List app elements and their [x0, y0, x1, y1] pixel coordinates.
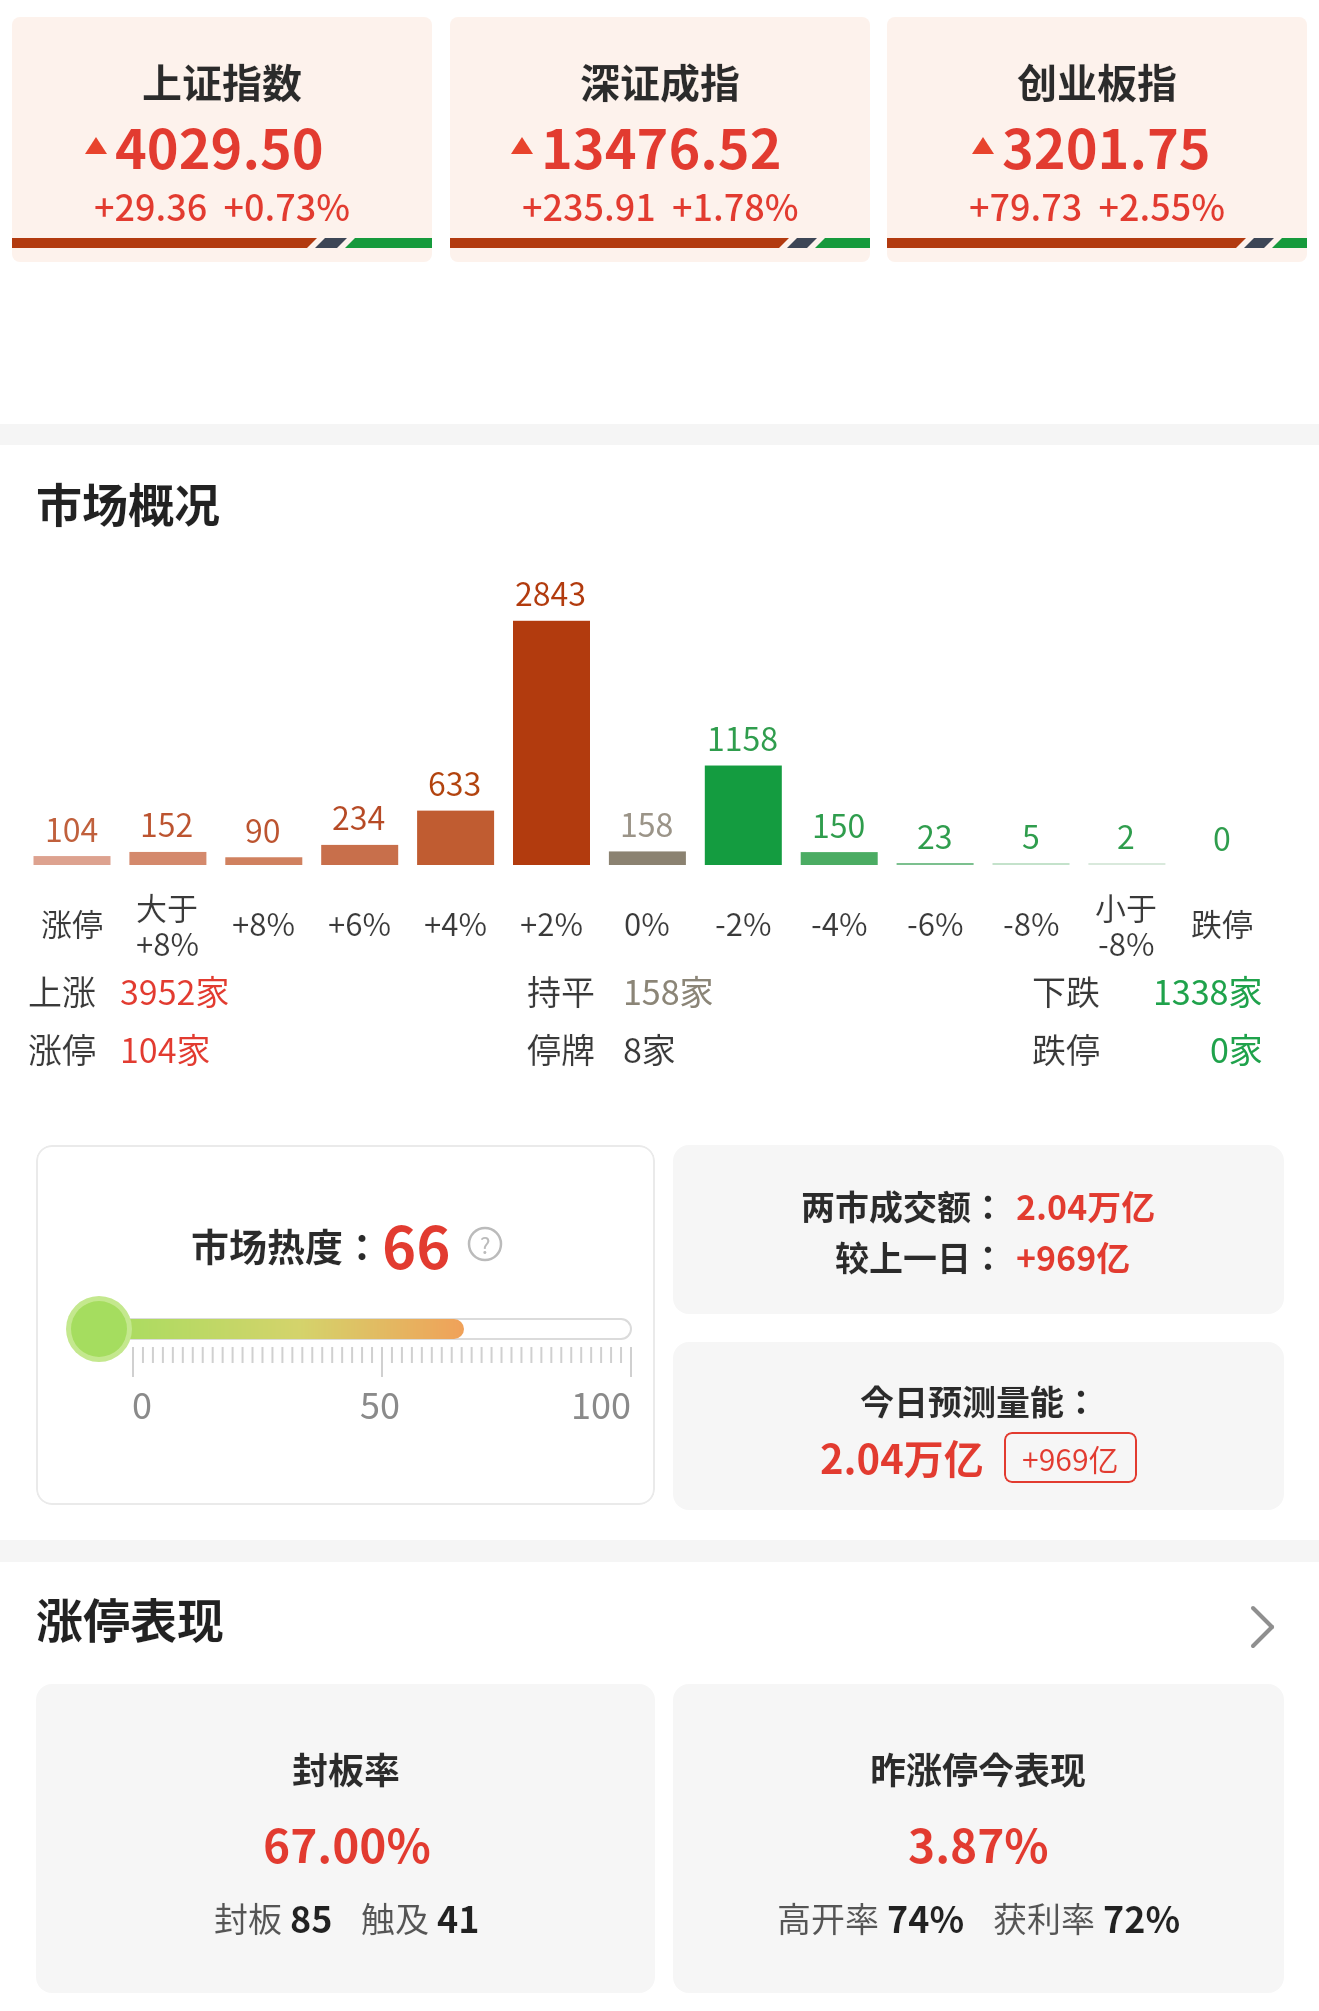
staticText: 66 — [382, 1202, 451, 1286]
staticText: 上证指数 — [142, 52, 302, 110]
staticText: +6% — [328, 900, 391, 945]
staticText: 0 — [132, 1377, 152, 1429]
staticText: 3.87% — [908, 1810, 1049, 1877]
button[interactable]: 两市成交额： — [673, 1145, 1284, 1314]
button[interactable]: 创业板指 — [887, 17, 1307, 262]
staticText: 100 — [571, 1377, 631, 1429]
staticText: +29.36 +0.73% — [94, 179, 351, 231]
staticText: 获利率 — [993, 1893, 1103, 1942]
staticText: 633 — [428, 759, 482, 805]
staticText: 停牌 — [527, 1024, 595, 1073]
button[interactable]: 市场热度： — [36, 1145, 655, 1505]
staticText: +8% — [232, 900, 295, 945]
staticText: 昨涨停今表现 — [870, 1742, 1087, 1794]
button[interactable]: 昨涨停今表现 — [673, 1684, 1284, 1993]
staticText: 234 — [332, 793, 386, 839]
staticText: 创业板指 — [1017, 52, 1177, 110]
staticText: -8% — [1098, 920, 1155, 965]
staticText: 158 — [620, 800, 674, 846]
staticText: 2.04万亿 — [1016, 1181, 1156, 1230]
staticText: 0家 — [1210, 1024, 1263, 1073]
button[interactable]: 涨停表现 — [0, 1592, 1319, 1662]
staticText: -6% — [907, 900, 964, 945]
staticText: 较上一日： — [835, 1232, 1005, 1281]
staticText: +79.73 +2.55% — [969, 179, 1226, 231]
staticText: 持平 — [527, 966, 595, 1015]
staticText: 13476.52 — [541, 106, 782, 184]
staticText: 158家 — [623, 966, 714, 1015]
staticText: 3952家 — [120, 966, 230, 1015]
staticText: 1338家 — [1153, 966, 1263, 1015]
staticText: 104家 — [120, 1024, 211, 1073]
staticText: 5 — [1022, 812, 1040, 858]
staticText: 触及 — [361, 1893, 437, 1942]
staticText: 市场概况 — [36, 469, 220, 536]
staticText: 1158 — [707, 714, 779, 760]
staticText: -8% — [1003, 900, 1060, 945]
staticText: 74% — [887, 1891, 965, 1943]
staticText: +235.91 +1.78% — [522, 179, 799, 231]
staticText: 下跌 — [1032, 966, 1100, 1015]
staticText: 封板 — [214, 1893, 290, 1942]
staticText: 跌停 — [1032, 1024, 1100, 1073]
staticText: 0 — [1213, 814, 1231, 860]
staticText: +4% — [424, 900, 487, 945]
staticText: 90 — [245, 806, 281, 852]
staticText: 2 — [1117, 812, 1135, 858]
staticText: 市场热度： — [191, 1217, 382, 1272]
staticText: 涨停 — [41, 900, 103, 945]
staticText: +8% — [136, 920, 199, 965]
staticText: 23 — [917, 812, 953, 858]
staticText: 跌停 — [1191, 900, 1253, 945]
staticText: -2% — [715, 900, 772, 945]
staticText: 8家 — [623, 1024, 676, 1073]
staticText: 72% — [1103, 1891, 1181, 1943]
staticText: +969亿 — [1016, 1232, 1131, 1281]
staticText: 2.04万亿 — [820, 1428, 984, 1486]
staticText: 104 — [45, 805, 99, 851]
button[interactable]: 上证指数 — [12, 17, 432, 262]
staticText: 小于 — [1095, 884, 1157, 929]
button[interactable]: 今日预测量能： — [673, 1342, 1284, 1510]
staticText: +969亿 — [1022, 1436, 1119, 1479]
staticText: 152 — [140, 800, 194, 846]
staticText: +2% — [520, 900, 583, 945]
button[interactable]: 深证成指 — [450, 17, 870, 262]
staticText: 2843 — [515, 569, 587, 615]
staticText: 85 — [290, 1891, 333, 1943]
staticText: 高开率 — [777, 1893, 887, 1942]
staticText: ? — [480, 1228, 491, 1260]
staticText: 150 — [812, 801, 866, 847]
staticText: -4% — [811, 900, 868, 945]
staticText: 50 — [360, 1377, 400, 1429]
staticText: 两市成交额： — [801, 1181, 1005, 1230]
staticText: 3201.75 — [1002, 106, 1211, 184]
staticText: 67.00% — [263, 1810, 431, 1877]
staticText: 深证成指 — [580, 52, 740, 110]
staticText: 封板率 — [292, 1742, 401, 1794]
staticText: 41 — [437, 1891, 480, 1943]
staticText: 涨停表现 — [36, 1583, 224, 1651]
staticText: 涨停 — [28, 1024, 96, 1073]
staticText: 今日预测量能： — [860, 1376, 1098, 1425]
button[interactable]: 封板率 — [36, 1684, 655, 1993]
staticText: 4029.50 — [115, 106, 324, 184]
staticText: 大于 — [136, 884, 198, 929]
staticText: 上涨 — [28, 966, 96, 1015]
staticText: 0% — [624, 900, 670, 945]
